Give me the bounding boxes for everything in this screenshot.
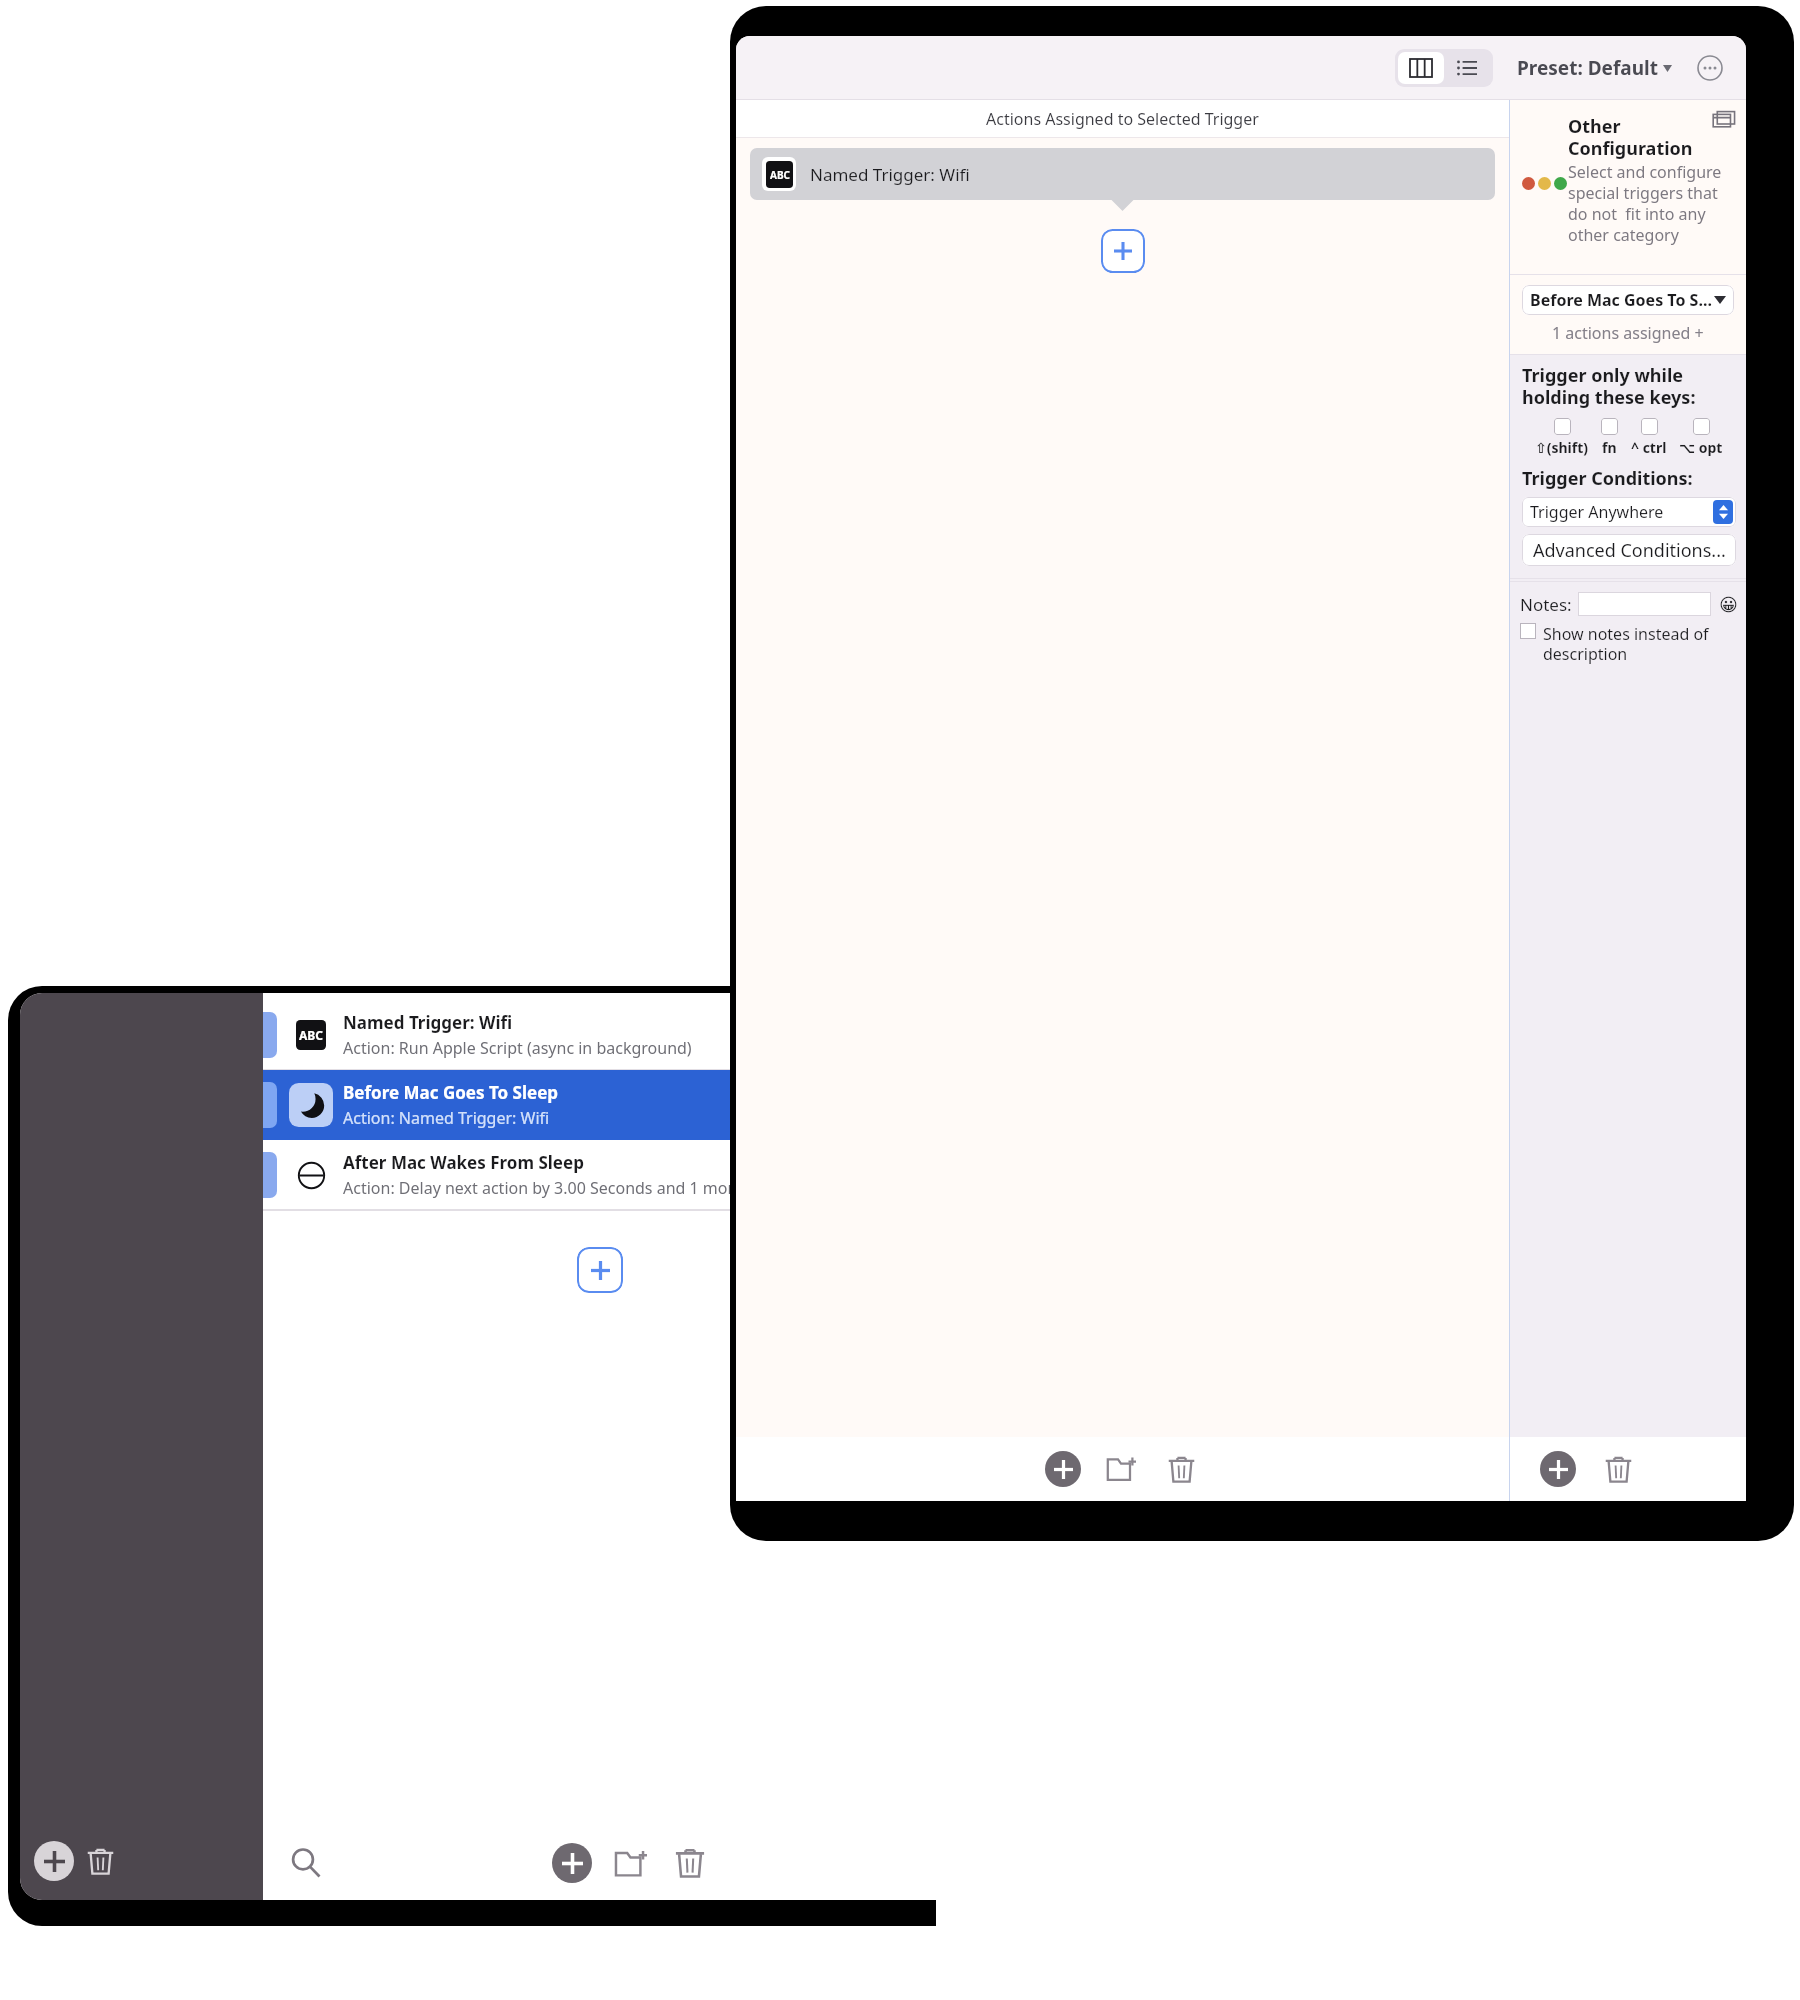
button[interactable]: More options	[1696, 54, 1724, 82]
button[interactable]: New Folder	[1101, 1449, 1141, 1489]
staticText: Other Configuration	[1568, 114, 1693, 161]
staticText: Named Trigger: Wifi	[343, 1011, 513, 1034]
staticText: Show notes instead of description	[1543, 623, 1738, 664]
staticText: 1 actions assigned +	[1552, 322, 1704, 344]
staticText: Trigger Anywhere	[1530, 501, 1713, 523]
button[interactable]: ABC	[750, 148, 1495, 200]
button[interactable]: Add Macro Group	[34, 1841, 74, 1881]
button[interactable]: Before Mac Goes To S...	[1530, 285, 1726, 315]
staticText: Trigger only while holding these keys:	[1522, 363, 1696, 410]
staticText: fn	[1602, 438, 1617, 457]
button[interactable]: ^ ctrl	[1631, 418, 1667, 457]
button[interactable]: Search	[283, 1840, 329, 1886]
staticText: Preset: Default	[1517, 55, 1658, 81]
button[interactable]: ABC	[263, 1000, 936, 1070]
staticText: Action: Delay next action by 3.00 Second…	[343, 1177, 743, 1199]
button[interactable]: Add Macro	[552, 1843, 592, 1883]
staticText: Before Mac Goes To S...	[1530, 289, 1714, 311]
staticText: Named Trigger: Wifi	[810, 163, 970, 186]
staticText: After Mac Wakes From Sleep	[343, 1151, 584, 1174]
button[interactable]: ⌥ opt	[1679, 418, 1723, 457]
staticText: Action: Run Apple Script (async in backg…	[343, 1037, 692, 1059]
staticText: Select and configure special triggers th…	[1568, 161, 1734, 246]
staticText: ⇧(shift)	[1535, 438, 1589, 457]
button[interactable]: Delete	[668, 1841, 712, 1885]
staticText: ABC	[299, 1027, 323, 1043]
button[interactable]: Preset: Default	[1517, 55, 1672, 81]
staticText: Notes:	[1520, 593, 1572, 616]
button[interactable]: Delete	[80, 1841, 120, 1881]
staticText: ABC	[770, 168, 790, 182]
staticText: Before Mac Goes To Sleep	[343, 1081, 559, 1104]
staticText: Action: Named Trigger: Wifi	[343, 1107, 550, 1129]
staticText: Actions Assigned to Selected Trigger	[986, 108, 1259, 130]
button[interactable]: Before Mac Goes To Sleep	[263, 1070, 936, 1140]
button[interactable]: Column View	[1398, 52, 1444, 84]
button[interactable]: ⇧(shift)	[1535, 418, 1589, 457]
button[interactable]: Add	[577, 1247, 623, 1293]
button[interactable]: Trigger Anywhere	[1530, 497, 1733, 527]
staticText: 😀	[1719, 594, 1738, 615]
button[interactable]	[1578, 592, 1711, 616]
staticText: ⌥ opt	[1679, 438, 1723, 457]
button[interactable]: Add Action	[1045, 1451, 1081, 1487]
button[interactable]: Add	[1101, 229, 1145, 273]
staticText: Trigger Conditions:	[1522, 466, 1693, 491]
button[interactable]: fn	[1601, 418, 1618, 457]
staticText: ^ ctrl	[1631, 438, 1667, 457]
button[interactable]: After Mac Wakes From Sleep	[263, 1140, 936, 1210]
button[interactable]: New Folder	[608, 1841, 652, 1885]
button[interactable]: Advanced Conditions...	[1522, 534, 1736, 566]
button[interactable]: Delete	[1161, 1449, 1201, 1489]
button[interactable]: List View	[1444, 52, 1490, 84]
button[interactable]: Add	[1540, 1451, 1576, 1487]
staticText: Advanced Conditions...	[1533, 538, 1726, 563]
button[interactable]	[1520, 623, 1536, 639]
button[interactable]: Delete	[1598, 1449, 1638, 1489]
